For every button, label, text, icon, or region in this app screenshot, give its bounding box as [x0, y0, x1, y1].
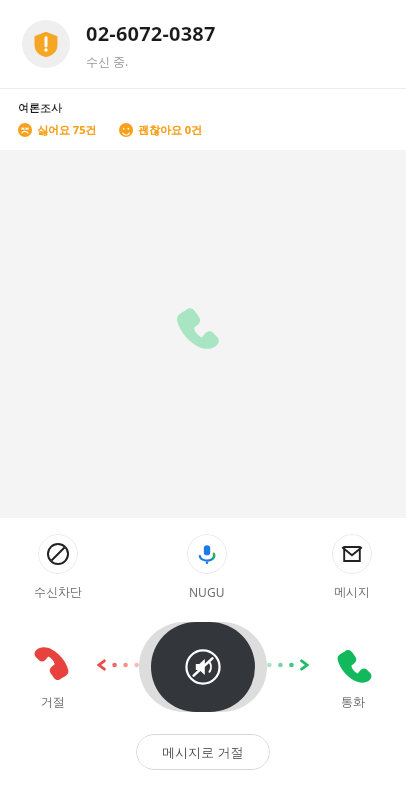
- button[interactable]: 거절: [36, 648, 70, 709]
- staticText: 수신차단: [34, 584, 82, 599]
- button[interactable]: 수신차단: [34, 534, 82, 599]
- button[interactable]: 메시지: [332, 534, 372, 599]
- button[interactable]: 괜찮아요 0건: [119, 122, 203, 137]
- staticText: 거절: [41, 694, 65, 709]
- staticText: 괜찮아요 0건: [138, 122, 203, 137]
- staticText: 싫어요 75건: [37, 122, 97, 137]
- staticText: 수신 중.: [86, 53, 129, 69]
- button[interactable]: NUGU: [187, 534, 227, 600]
- staticText: 통화: [341, 694, 365, 709]
- button[interactable]: 벨소리 끄기: [139, 622, 267, 712]
- staticText: 메시지: [334, 584, 370, 599]
- staticText: NUGU: [189, 584, 225, 600]
- staticText: 메시지로 거절: [162, 743, 244, 761]
- staticText: 02-6072-0387: [86, 20, 216, 47]
- other: 거절: [36, 648, 70, 682]
- other: 통화: [336, 648, 370, 682]
- button[interactable]: 통화: [336, 648, 370, 709]
- staticText: 여론조사: [18, 101, 62, 115]
- button[interactable]: 메시지로 거절: [136, 734, 270, 770]
- button[interactable]: 싫어요 75건: [18, 122, 97, 137]
